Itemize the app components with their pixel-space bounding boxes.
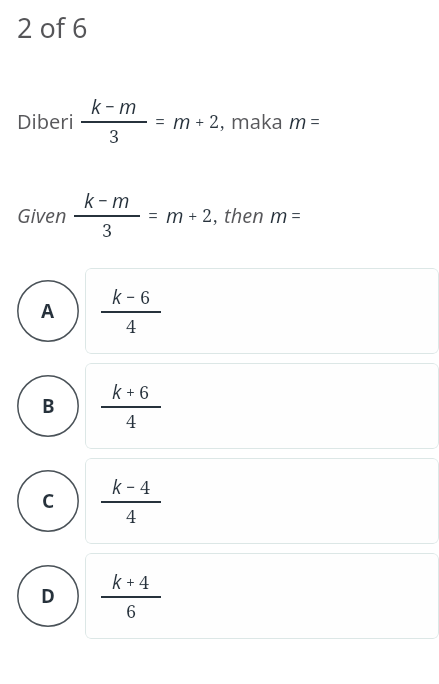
staticText: + [126,571,135,593]
staticText: 2 of 6 [17,9,88,46]
staticText: k [112,284,122,310]
staticText: 4 [126,504,137,529]
button[interactable]: D [0,553,439,639]
staticText: m [289,108,307,135]
staticText: − [98,189,108,212]
staticText: D [41,583,55,609]
staticText: 2 [202,203,213,228]
staticText: 6 [126,599,137,624]
staticText: + [195,110,205,133]
staticText: A [41,298,55,324]
staticText: = [148,203,159,228]
staticText: , [220,109,225,134]
staticText: m [112,187,130,214]
staticText: − [126,476,136,498]
staticText: 6 [140,285,151,310]
staticText: = [155,109,166,134]
staticText: m [166,202,184,229]
staticText: Given [17,202,67,229]
staticText: B [42,393,55,419]
staticText: + [126,381,135,403]
staticText: 4 [139,570,150,595]
staticText: then [224,202,264,229]
staticText: m [270,202,288,229]
staticText: 2 [209,109,220,134]
staticText: + [188,204,198,227]
staticText: 3 [109,124,120,149]
staticText: − [105,95,115,118]
staticText: k [112,379,122,405]
button[interactable]: B [0,363,439,449]
staticText: − [126,286,136,308]
staticText: k [112,569,122,595]
staticText: , [213,203,218,228]
staticText: k [91,93,101,120]
staticText: 6 [139,380,150,405]
staticText: 4 [140,475,151,500]
button[interactable]: C [0,458,439,544]
button[interactable]: A [0,268,439,354]
staticText: C [42,488,55,514]
staticText: 4 [126,409,137,434]
staticText: = [310,109,321,134]
staticText: m [173,108,191,135]
staticText: 3 [102,218,113,243]
staticText: k [112,474,122,500]
staticText: maka [231,108,283,135]
staticText: = [291,203,302,228]
staticText: m [119,93,137,120]
staticText: Diberi [17,108,74,135]
staticText: 4 [126,314,137,339]
staticText: k [84,187,94,214]
